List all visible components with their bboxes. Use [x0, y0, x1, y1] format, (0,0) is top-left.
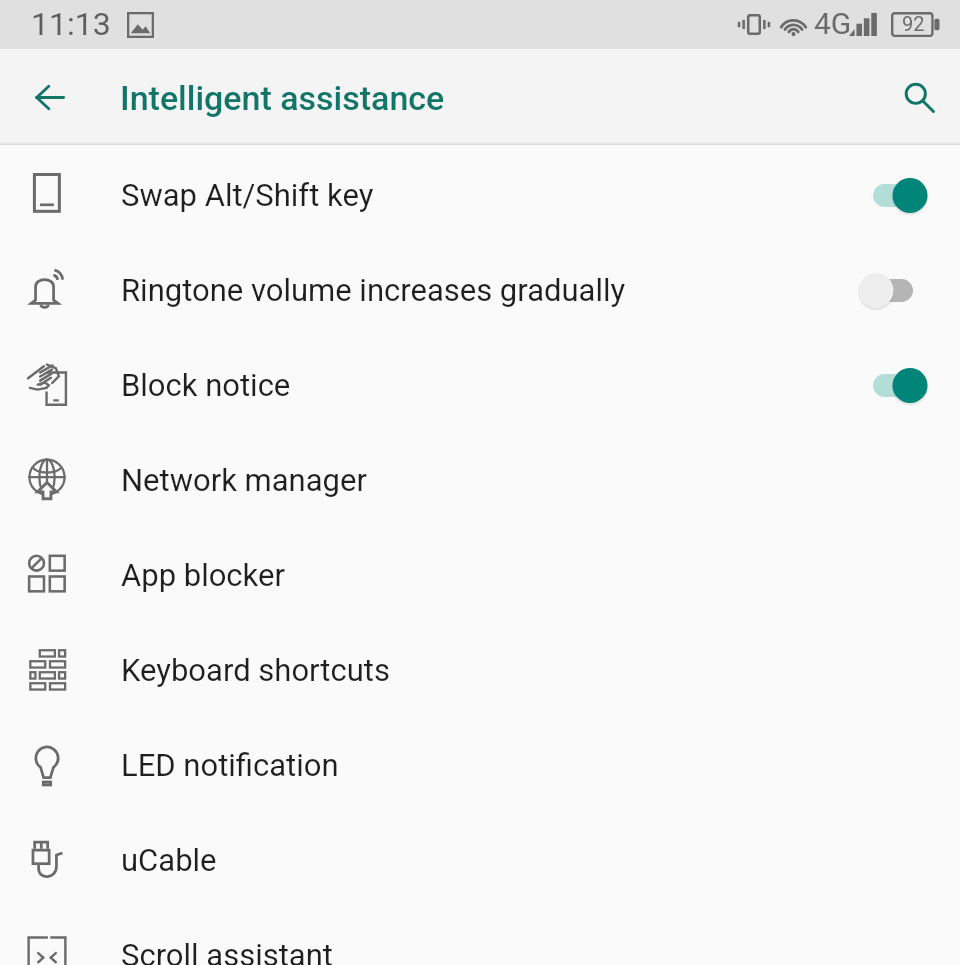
staticText: Intelligent assistance: [120, 78, 445, 118]
button[interactable]: Keyboard shortcuts: [0, 622, 960, 717]
button[interactable]: Search: [883, 61, 955, 133]
staticText: LED notification: [121, 747, 920, 783]
button[interactable]: Block notice: [0, 337, 960, 432]
staticText: 92: [902, 12, 925, 35]
button[interactable]: Ringtone volume increases gradually: [0, 242, 960, 337]
button[interactable]: Toggle: [826, 157, 960, 233]
staticText: Block notice: [121, 367, 826, 403]
button[interactable]: LED notification: [0, 717, 960, 812]
staticText: Keyboard shortcuts: [121, 652, 920, 688]
button[interactable]: Scroll assistant: [0, 907, 960, 965]
button[interactable]: Network manager: [0, 432, 960, 527]
staticText: 11:13: [31, 5, 111, 43]
button[interactable]: App blocker: [0, 527, 960, 622]
staticText: Swap Alt/Shift key: [121, 177, 826, 213]
staticText: Scroll assistant: [121, 937, 920, 965]
staticText: 4G: [814, 6, 852, 41]
staticText: Ringtone volume increases gradually: [121, 272, 826, 308]
button[interactable]: Back: [12, 59, 88, 135]
staticText: uCable: [121, 842, 920, 878]
staticText: App blocker: [121, 557, 920, 593]
button[interactable]: uCable: [0, 812, 960, 907]
button[interactable]: Toggle: [826, 252, 960, 328]
button[interactable]: Toggle: [826, 347, 960, 423]
staticText: Network manager: [121, 462, 920, 498]
button[interactable]: Swap Alt/Shift key: [0, 147, 960, 242]
